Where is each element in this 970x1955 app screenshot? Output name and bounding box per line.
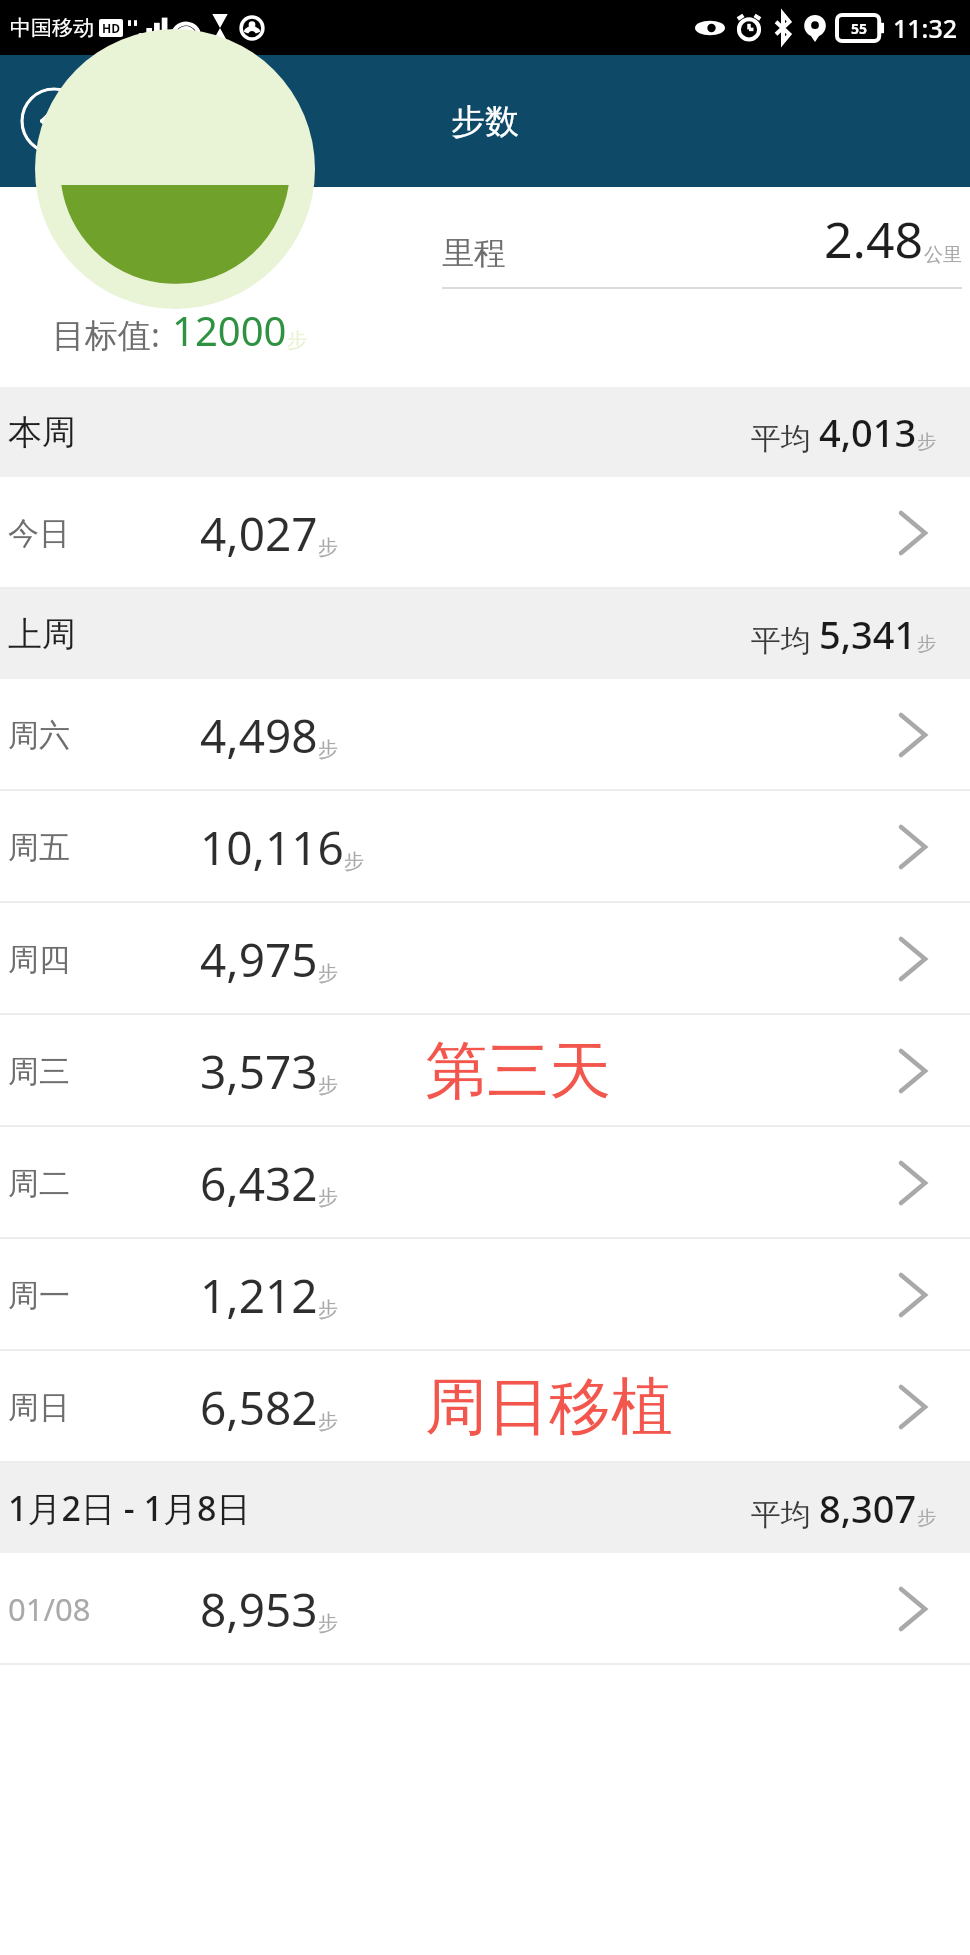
staticText: 2.48 bbox=[824, 205, 924, 273]
staticText: 步 bbox=[318, 1611, 338, 1636]
staticText: 周日 bbox=[8, 1388, 70, 1427]
staticText: 步数 bbox=[451, 100, 519, 143]
staticText: 11:32 bbox=[893, 11, 958, 45]
staticText: 3,573 bbox=[200, 1040, 318, 1103]
staticText: 步 bbox=[917, 632, 936, 656]
staticText: 步 bbox=[318, 737, 338, 762]
button[interactable]: 周五 bbox=[0, 791, 970, 903]
button[interactable]: 周二 bbox=[0, 1127, 970, 1239]
staticText: 8,953 bbox=[200, 1578, 318, 1641]
staticText: 平均 bbox=[751, 1493, 819, 1534]
button[interactable]: 01/08 bbox=[0, 1553, 970, 1665]
button[interactable]: 周四 bbox=[0, 903, 970, 1015]
staticText: HD bbox=[102, 20, 120, 36]
button[interactable]: 今日 bbox=[0, 477, 970, 589]
staticText: 6,432 bbox=[200, 1152, 318, 1215]
staticText: 步 bbox=[318, 1073, 338, 1098]
staticText: 中国移动 bbox=[10, 15, 94, 41]
staticText: 本周 bbox=[8, 411, 76, 454]
staticText: 上周 bbox=[8, 613, 76, 656]
button[interactable]: 返回 bbox=[20, 87, 88, 155]
staticText: 步 bbox=[318, 961, 338, 986]
staticText: 步 bbox=[287, 328, 307, 353]
button[interactable]: 本周 bbox=[0, 387, 970, 477]
staticText: 4,027 bbox=[200, 502, 318, 565]
staticText: 周日移植 bbox=[425, 1368, 673, 1446]
button[interactable]: 1月2日 - 1月8日 bbox=[0, 1463, 970, 1553]
staticText: 公里 bbox=[924, 243, 962, 267]
staticText: 步 bbox=[344, 849, 364, 874]
staticText: 1,212 bbox=[200, 1264, 318, 1327]
staticText: 周六 bbox=[8, 716, 70, 755]
staticText: 周二 bbox=[8, 1164, 70, 1203]
staticText: 8,307 bbox=[819, 1482, 917, 1534]
staticText: 平均 bbox=[751, 619, 819, 660]
staticText: 今日 bbox=[8, 514, 70, 553]
staticText: 10,116 bbox=[200, 816, 344, 879]
staticText: 平均 bbox=[751, 417, 819, 458]
button[interactable]: 周六 bbox=[0, 679, 970, 791]
staticText: 周一 bbox=[8, 1276, 70, 1315]
staticText: 4,498 bbox=[200, 704, 318, 767]
button[interactable]: 上周 bbox=[0, 589, 970, 679]
staticText: 周三 bbox=[8, 1052, 70, 1091]
staticText: 周四 bbox=[8, 940, 70, 979]
button[interactable]: 周三 bbox=[0, 1015, 970, 1127]
button[interactable]: 周日 bbox=[0, 1351, 970, 1463]
staticText: 步 bbox=[318, 1297, 338, 1322]
staticText: 步 bbox=[917, 1506, 936, 1530]
staticText: 55 bbox=[851, 19, 868, 38]
staticText: 步 bbox=[318, 1185, 338, 1210]
staticText: 4,975 bbox=[200, 928, 318, 991]
staticText: 周五 bbox=[8, 828, 70, 867]
staticText: 里程 bbox=[442, 233, 506, 273]
staticText: 12000 bbox=[172, 303, 287, 357]
staticText: 01/08 bbox=[8, 1588, 91, 1630]
staticText: 4,013 bbox=[819, 406, 917, 458]
staticText: 步 bbox=[917, 430, 936, 454]
staticText: 1月2日 - 1月8日 bbox=[8, 1485, 251, 1531]
staticText: 6,582 bbox=[200, 1376, 318, 1439]
staticText: 5,341 bbox=[819, 608, 917, 660]
button[interactable]: 周一 bbox=[0, 1239, 970, 1351]
staticText: 步 bbox=[318, 1409, 338, 1434]
staticText: 目标值: bbox=[52, 312, 160, 357]
staticText: 第三天 bbox=[425, 1032, 611, 1110]
staticText: 步 bbox=[318, 535, 338, 560]
